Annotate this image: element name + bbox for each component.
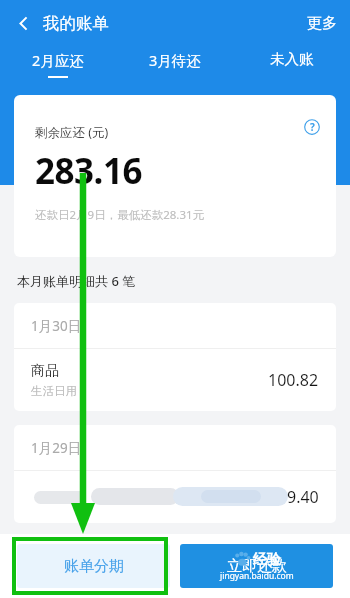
button[interactable]: Back xyxy=(4,4,42,42)
button[interactable]: 1月30日 xyxy=(14,303,336,348)
button[interactable]: 剩余应还 (元) xyxy=(14,95,336,257)
staticText: 剩余应还 (元) xyxy=(35,124,109,141)
staticText: 283.16 xyxy=(35,147,142,195)
button[interactable]: 更多 xyxy=(294,4,350,43)
staticText: ? xyxy=(310,120,315,134)
button[interactable]: 商品 xyxy=(14,349,336,411)
button[interactable]: Help xyxy=(299,114,325,140)
staticText: 3月待还 xyxy=(149,50,201,70)
button[interactable]: 3月待还 xyxy=(116,50,233,84)
staticText: 商品 xyxy=(31,362,59,380)
staticText: 本月账单明细共 6 笔 xyxy=(17,272,136,290)
staticText: 1月30日 xyxy=(31,317,82,335)
staticText: 2月应还 xyxy=(32,50,84,70)
staticText: 未入账 xyxy=(270,50,314,68)
staticText: 还款日2月9日，最低还款28.31元 xyxy=(35,207,205,223)
staticText: 1月29日 xyxy=(31,439,82,457)
button[interactable]: 账单分期 xyxy=(17,544,170,588)
staticText: 100.82 xyxy=(268,369,319,391)
button[interactable]: 立即还款 xyxy=(180,544,333,588)
staticText: 9.40 xyxy=(287,486,319,508)
button[interactable]: 2月应还 xyxy=(0,50,116,84)
staticText: 账单分期 xyxy=(64,557,124,576)
staticText: 经验 xyxy=(253,551,281,569)
staticText: jingyan.baidu.com xyxy=(220,570,294,582)
staticText: 我的账单 xyxy=(43,13,109,34)
staticText: 更多 xyxy=(307,14,337,33)
staticText: 生活日用 xyxy=(31,384,77,398)
button[interactable]: 未入账 xyxy=(233,50,350,84)
button[interactable]: 9.40 xyxy=(14,471,336,523)
staticText: 立即还款 xyxy=(227,557,287,576)
button[interactable]: 1月29日 xyxy=(14,425,336,470)
